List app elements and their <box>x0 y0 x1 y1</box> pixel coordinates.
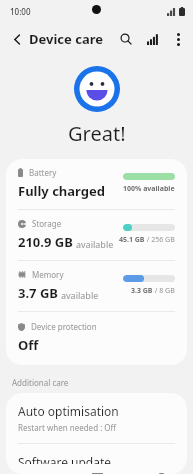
staticText: 45.1 GB <box>119 235 145 245</box>
button[interactable]: Software update <box>6 444 187 474</box>
staticText: Fully charged <box>18 182 105 200</box>
button[interactable]: Battery <box>6 159 187 209</box>
staticText: Device protection <box>31 321 97 332</box>
staticText: Auto optimisation <box>18 403 119 419</box>
staticText: 100% available <box>123 184 175 194</box>
staticText: / 8 GB <box>153 286 175 296</box>
button[interactable]: Auto optimisation <box>6 393 187 443</box>
staticText: Restart when needed : Off <box>18 422 117 433</box>
staticText: Battery <box>29 167 57 178</box>
button[interactable]: More options <box>165 26 191 52</box>
staticText: Memory <box>32 269 64 280</box>
staticText: 3.3 GB <box>131 286 153 296</box>
staticText: 210.9 GB <box>18 233 73 251</box>
button[interactable]: Search <box>113 26 139 52</box>
staticText: Additional care <box>12 377 69 388</box>
staticText: Storage <box>32 218 62 229</box>
staticText: Off <box>18 336 39 354</box>
staticText: Software update <box>18 454 112 464</box>
staticText: 10:00 <box>10 6 31 17</box>
staticText: available <box>61 289 99 301</box>
staticText: available <box>76 238 114 250</box>
staticText: 3.7 GB <box>18 284 58 302</box>
button[interactable]: Memory <box>6 261 187 311</box>
button[interactable]: Back <box>4 26 30 52</box>
button[interactable]: Storage <box>6 210 187 260</box>
staticText: / 256 GB <box>145 235 175 245</box>
staticText: Device care <box>29 30 103 48</box>
button[interactable]: Usage statistics <box>139 26 165 52</box>
button[interactable]: Device protection <box>6 312 187 365</box>
staticText: Great! <box>68 120 126 147</box>
